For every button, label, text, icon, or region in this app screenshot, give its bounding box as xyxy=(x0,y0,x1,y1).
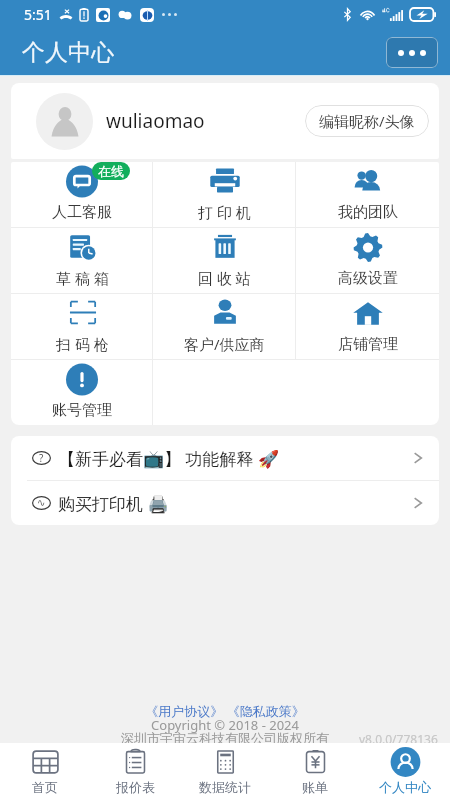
button[interactable]: ? xyxy=(11,436,439,480)
staticText: Copyright © 2018 - 2024 xyxy=(151,716,299,734)
button[interactable]: 我的团队 xyxy=(296,162,439,227)
staticText: 编辑昵称/头像 xyxy=(319,111,415,131)
button[interactable]: 扫 码 枪 xyxy=(11,294,153,359)
staticText: 人工客服 xyxy=(52,203,112,222)
button[interactable]: 首页 xyxy=(0,743,90,800)
staticText: 数据统计 xyxy=(199,779,251,795)
staticText: 高级设置 xyxy=(338,269,398,288)
button[interactable]: 个人中心 xyxy=(360,743,450,800)
button[interactable]: 账单 xyxy=(270,743,360,800)
staticText: 草 稿 箱 xyxy=(56,268,109,288)
staticText: 《用户协议》 《隐私政策》 xyxy=(145,702,305,720)
button[interactable]: ∿ xyxy=(11,481,439,525)
staticText: 账单 xyxy=(302,779,328,795)
staticText: 5:51 xyxy=(24,5,52,24)
staticText: ∿ xyxy=(37,497,46,509)
button[interactable]: 高级设置 xyxy=(296,228,439,293)
button[interactable]: 账号管理 xyxy=(11,360,153,425)
staticText: 扫 码 枪 xyxy=(56,334,109,354)
staticText: 深圳市宇宙云科技有限公司版权所有 xyxy=(121,730,329,746)
staticText: 个人中心 xyxy=(379,779,431,795)
staticText: 报价表 xyxy=(116,779,155,795)
staticText: wuliaomao xyxy=(106,108,205,134)
button[interactable]: 数据统计 xyxy=(180,743,270,800)
button[interactable]: 报价表 xyxy=(90,743,180,800)
staticText: 在线 xyxy=(98,163,124,179)
staticText: 账号管理 xyxy=(52,401,112,420)
staticText: 首页 xyxy=(32,779,58,795)
button[interactable]: More options xyxy=(386,37,438,68)
staticText: v8.0.0/778136 xyxy=(359,731,438,747)
staticText: 【新手必看📺】 功能解释 🚀 xyxy=(58,447,280,470)
button[interactable]: 店铺管理 xyxy=(296,294,439,359)
staticText: 店铺管理 xyxy=(338,335,398,354)
staticText: 个人中心 xyxy=(22,38,114,67)
staticText: 购买打印机 🖨 xyxy=(58,492,169,515)
button[interactable]: 打 印 机 xyxy=(153,162,296,227)
button[interactable]: 回 收 站 xyxy=(153,228,296,293)
staticText: 回 收 站 xyxy=(198,268,251,288)
staticText: 客户/供应商 xyxy=(184,334,265,354)
button[interactable]: 在线 xyxy=(11,162,153,227)
staticText: 打 印 机 xyxy=(198,202,251,222)
button[interactable]: 客户/供应商 xyxy=(153,294,296,359)
staticText: ? xyxy=(39,451,44,465)
staticText: 我的团队 xyxy=(338,203,398,222)
button[interactable]: 编辑昵称/头像 xyxy=(305,105,429,137)
button[interactable]: 草 稿 箱 xyxy=(11,228,153,293)
button[interactable]: wuliaomao xyxy=(11,83,439,159)
